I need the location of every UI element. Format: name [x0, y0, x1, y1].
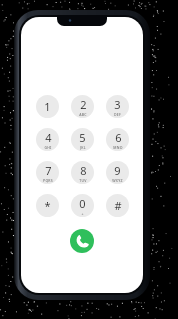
- staticText: MNO: [113, 145, 123, 150]
- button[interactable]: 9: [106, 161, 129, 184]
- staticText: +: [81, 211, 84, 216]
- button[interactable]: *: [36, 194, 59, 217]
- staticText: ABC: [79, 112, 87, 117]
- button[interactable]: 7: [36, 161, 59, 184]
- staticText: 1: [44, 99, 51, 114]
- button[interactable]: 5: [71, 128, 94, 151]
- button[interactable]: 2: [71, 95, 94, 118]
- staticText: GHI: [44, 145, 52, 150]
- staticText: PQRS: [43, 178, 53, 183]
- staticText: 7: [45, 163, 52, 178]
- staticText: 8: [80, 163, 87, 178]
- button[interactable]: 0: [71, 194, 94, 217]
- staticText: #: [114, 198, 122, 213]
- staticText: 0: [79, 196, 86, 211]
- staticText: 2: [80, 97, 87, 112]
- button[interactable]: 6: [106, 128, 129, 151]
- button[interactable]: Call: [70, 229, 94, 253]
- staticText: 9: [114, 163, 121, 178]
- button[interactable]: 4: [36, 128, 59, 151]
- staticText: JKL: [80, 145, 86, 150]
- staticText: *: [44, 198, 51, 213]
- button[interactable]: 3: [106, 95, 129, 118]
- staticText: 3: [114, 97, 121, 112]
- staticText: 5: [79, 130, 86, 145]
- staticText: WXYZ: [112, 178, 123, 183]
- staticText: TUV: [79, 178, 87, 183]
- button[interactable]: #: [106, 194, 129, 217]
- staticText: 4: [45, 130, 52, 145]
- staticText: 6: [115, 130, 122, 145]
- button[interactable]: 1: [36, 95, 59, 118]
- button[interactable]: 8: [71, 161, 94, 184]
- staticText: DEF: [114, 112, 121, 117]
